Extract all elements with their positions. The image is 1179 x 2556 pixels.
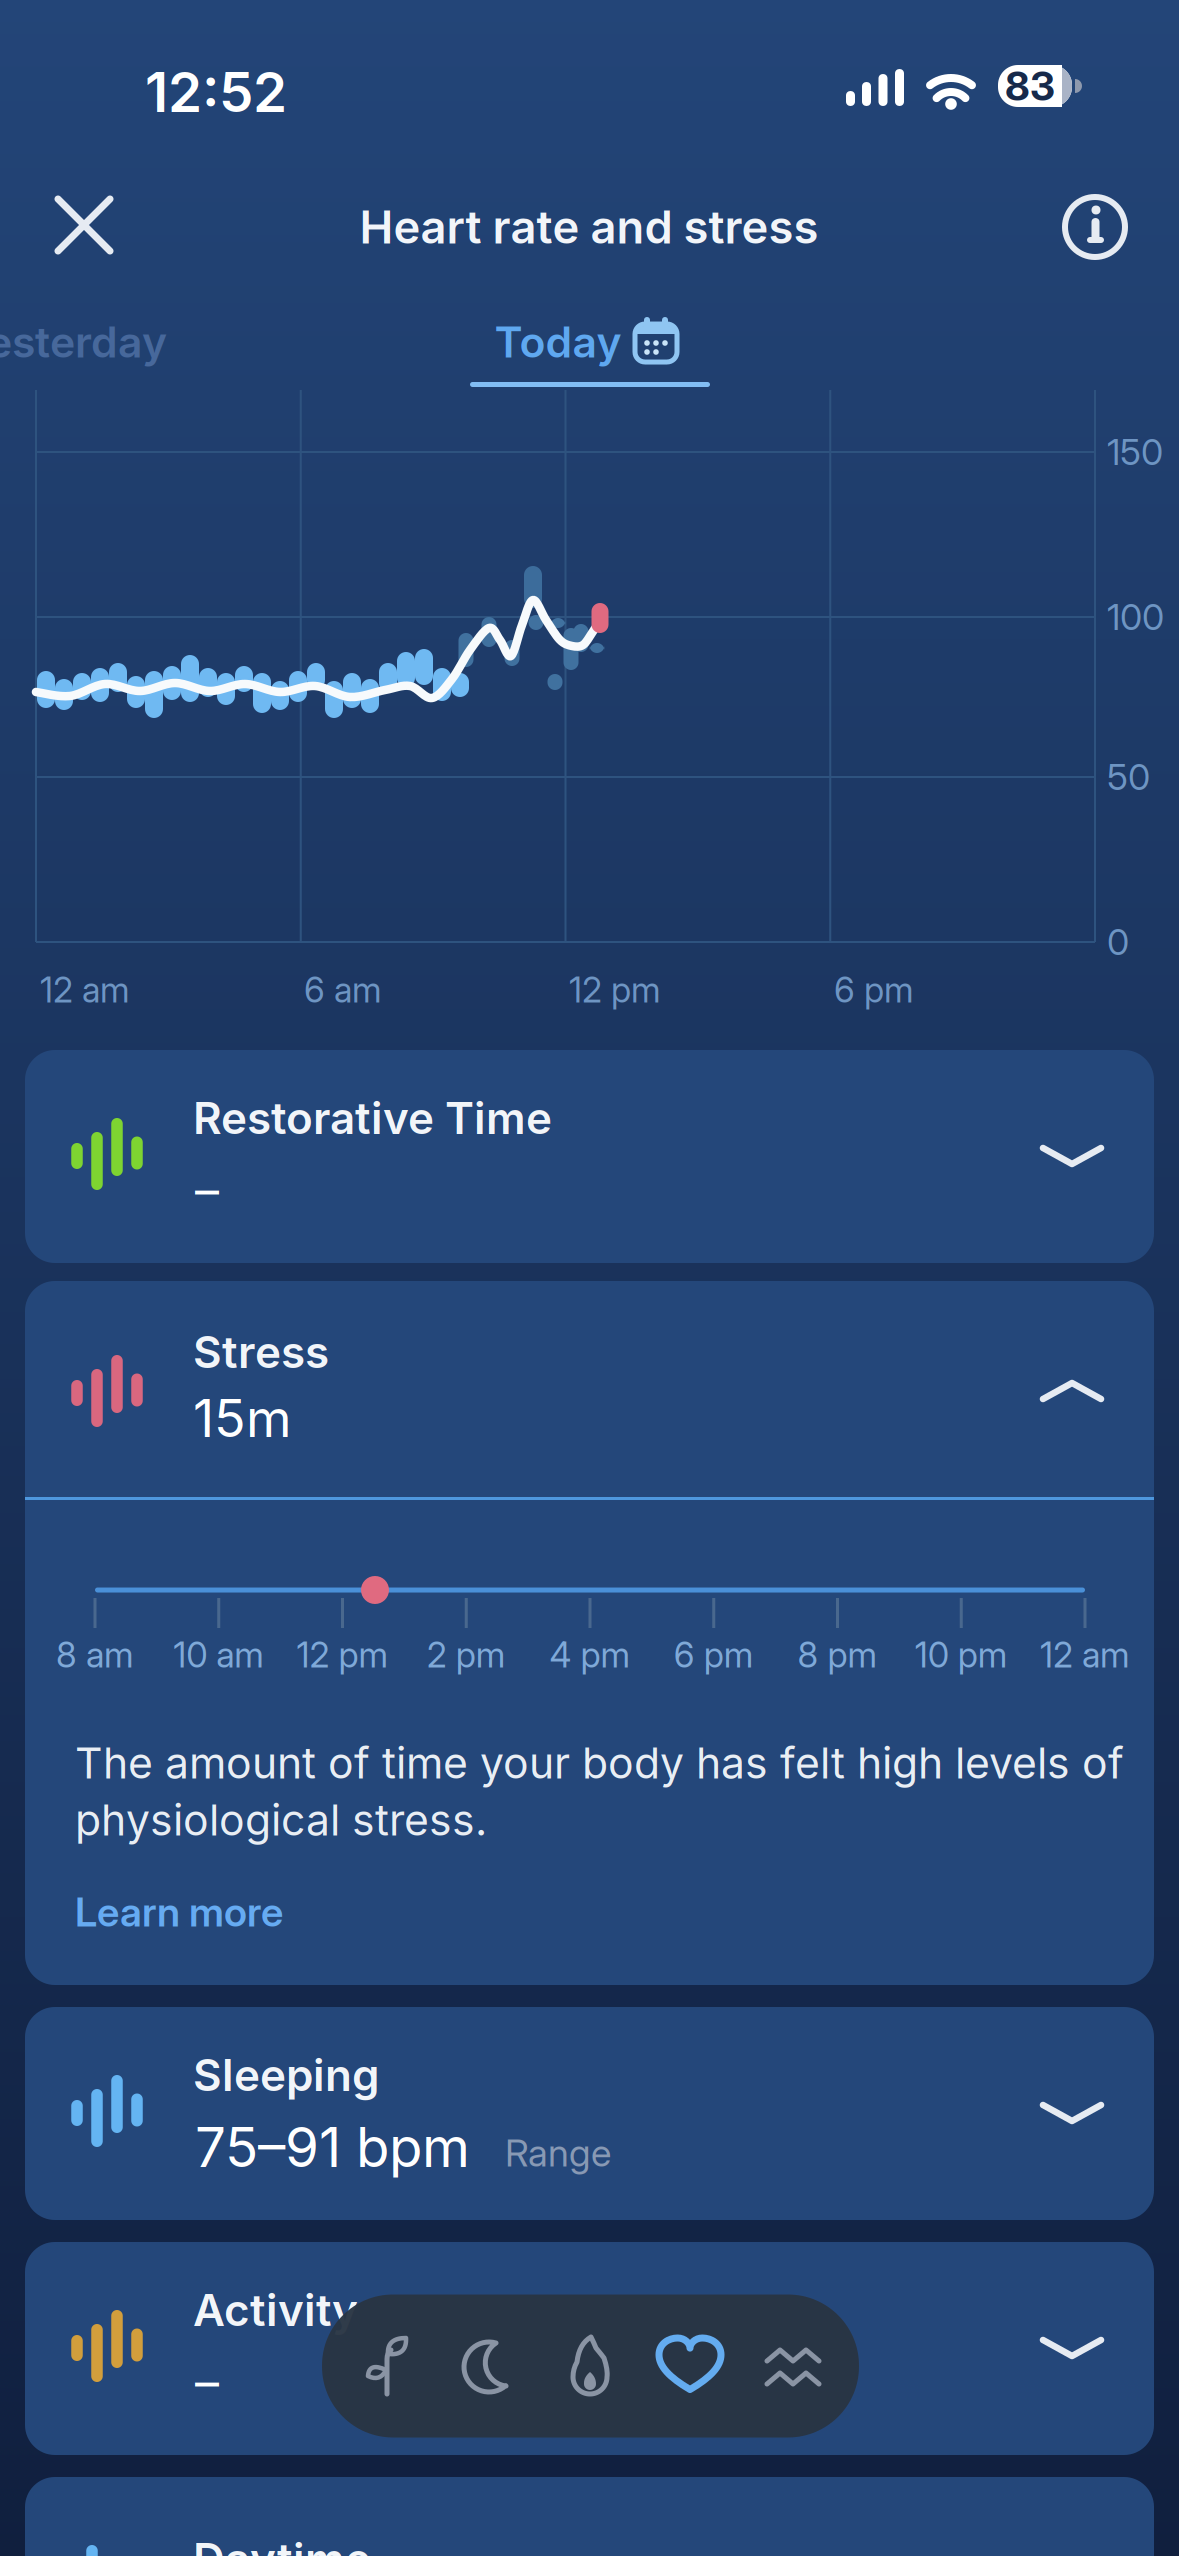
button[interactable]: Sleeping bbox=[25, 2007, 1154, 2220]
staticText: Today bbox=[494, 317, 621, 367]
staticText: Sleeping bbox=[193, 2049, 380, 2101]
staticText: 83 bbox=[1005, 62, 1055, 110]
staticText: 10 am bbox=[173, 1635, 264, 1675]
staticText: – bbox=[195, 2354, 219, 2410]
staticText: 8 pm bbox=[797, 1635, 877, 1675]
button[interactable]: Sleep bbox=[449, 2326, 529, 2406]
button[interactable]: Heart rate bbox=[645, 2321, 735, 2411]
staticText: Range bbox=[505, 2131, 611, 2175]
button[interactable]: Stress bbox=[753, 2327, 833, 2407]
staticText: 12 am bbox=[40, 970, 130, 1010]
staticText: Stress bbox=[193, 1326, 329, 1378]
staticText: physiological stress. bbox=[75, 1795, 487, 1845]
staticText: Learn more bbox=[75, 1888, 283, 1936]
staticText: 12 am bbox=[1040, 1635, 1130, 1675]
button[interactable]: Yesterday bbox=[0, 317, 261, 367]
staticText: Activity bbox=[193, 2284, 358, 2336]
staticText: 100 bbox=[1107, 596, 1164, 638]
staticText: The amount of time your body has felt hi… bbox=[75, 1738, 1124, 1788]
staticText: 50 bbox=[1107, 756, 1150, 798]
button[interactable]: Activity bbox=[25, 2242, 1154, 2455]
staticText: 15m bbox=[193, 1387, 292, 1449]
staticText: 10 pm bbox=[915, 1635, 1008, 1675]
button[interactable]: Tags bbox=[347, 2325, 427, 2405]
staticText: 6 am bbox=[304, 970, 382, 1010]
staticText: 4 pm bbox=[549, 1635, 630, 1675]
staticText: 12 pm bbox=[296, 1635, 388, 1675]
staticText: 8 am bbox=[56, 1635, 134, 1675]
staticText: Yesterday bbox=[0, 317, 167, 367]
staticText: 150 bbox=[1107, 431, 1163, 473]
button[interactable]: Today bbox=[463, 310, 713, 374]
staticText: 6 pm bbox=[674, 1635, 754, 1675]
button[interactable]: Restorative Time bbox=[25, 1050, 1154, 1263]
staticText: 12 pm bbox=[569, 970, 661, 1010]
staticText: 0 bbox=[1107, 921, 1129, 963]
staticText: 2 pm bbox=[427, 1635, 506, 1675]
staticText: 75–91 bpm bbox=[195, 2115, 470, 2179]
button[interactable]: Info bbox=[1050, 182, 1140, 272]
staticText: Daytime bbox=[193, 2533, 371, 2556]
button[interactable]: Close bbox=[39, 180, 129, 270]
staticText: Restorative Time bbox=[193, 1092, 552, 1144]
staticText: 6 pm bbox=[834, 970, 914, 1010]
staticText: Heart rate and stress bbox=[359, 200, 818, 254]
button[interactable]: Stress bbox=[25, 1281, 1154, 1498]
staticText: – bbox=[195, 1162, 219, 1218]
button[interactable]: Activity bbox=[550, 2326, 630, 2406]
button[interactable]: Learn more bbox=[75, 1888, 475, 1936]
staticText: 12:52 bbox=[145, 60, 287, 124]
